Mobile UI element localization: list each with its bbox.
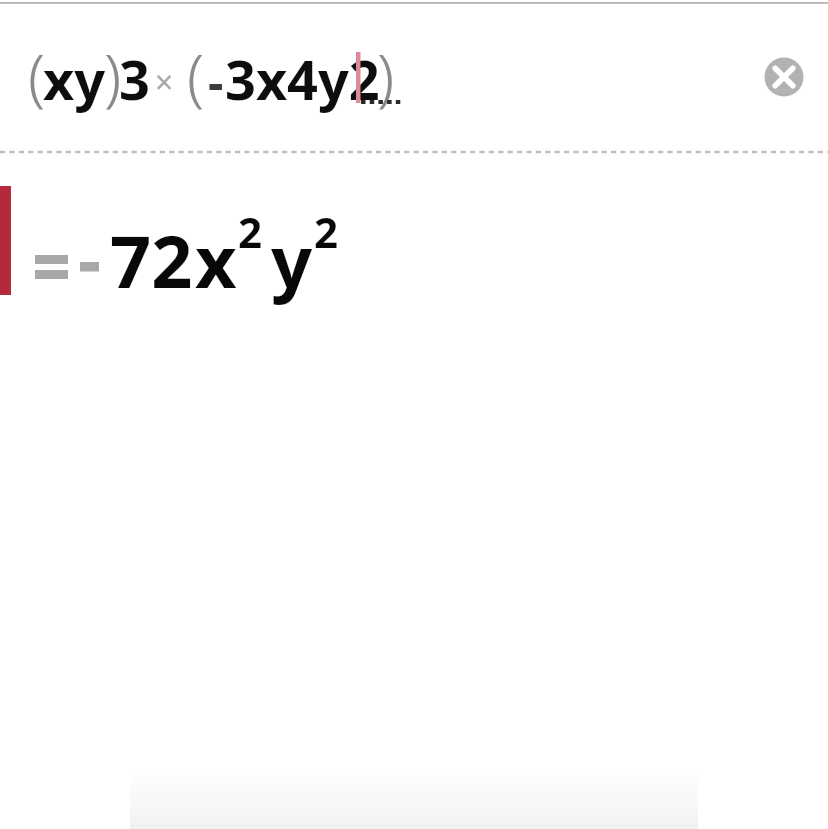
button[interactable]: Clear expression (758, 51, 810, 103)
button[interactable]: Expression input field (0, 8, 742, 146)
button[interactable]: Result: equals minus 72 x squared y squa… (0, 180, 828, 300)
